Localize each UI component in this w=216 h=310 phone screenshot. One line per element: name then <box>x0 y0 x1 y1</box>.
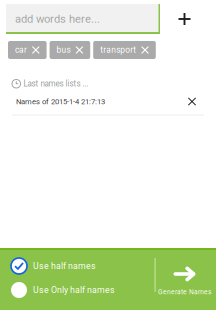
button[interactable]: bus <box>50 41 90 59</box>
staticText: Names of 2015-1-4 21:7:13 <box>16 97 105 106</box>
button[interactable]: Use half names <box>11 257 143 275</box>
button[interactable]: Generate Names <box>154 263 215 297</box>
staticText: Generate Names <box>158 288 211 296</box>
button[interactable]: Add word <box>160 4 209 34</box>
staticText: car <box>15 45 27 55</box>
staticText: Last names lists ... <box>23 79 88 88</box>
button[interactable]: Use Only half names <box>11 281 143 299</box>
button[interactable]: transport <box>93 41 156 59</box>
staticText: Use half names <box>33 261 96 271</box>
button[interactable]: car <box>8 41 47 59</box>
staticText: Use Only half names <box>33 285 115 295</box>
staticText: add words here... <box>15 12 100 25</box>
button[interactable]: Names of 2015-1-4 21:7:13 <box>0 88 216 114</box>
staticText: bus <box>57 45 71 55</box>
staticText: transport <box>100 45 136 55</box>
